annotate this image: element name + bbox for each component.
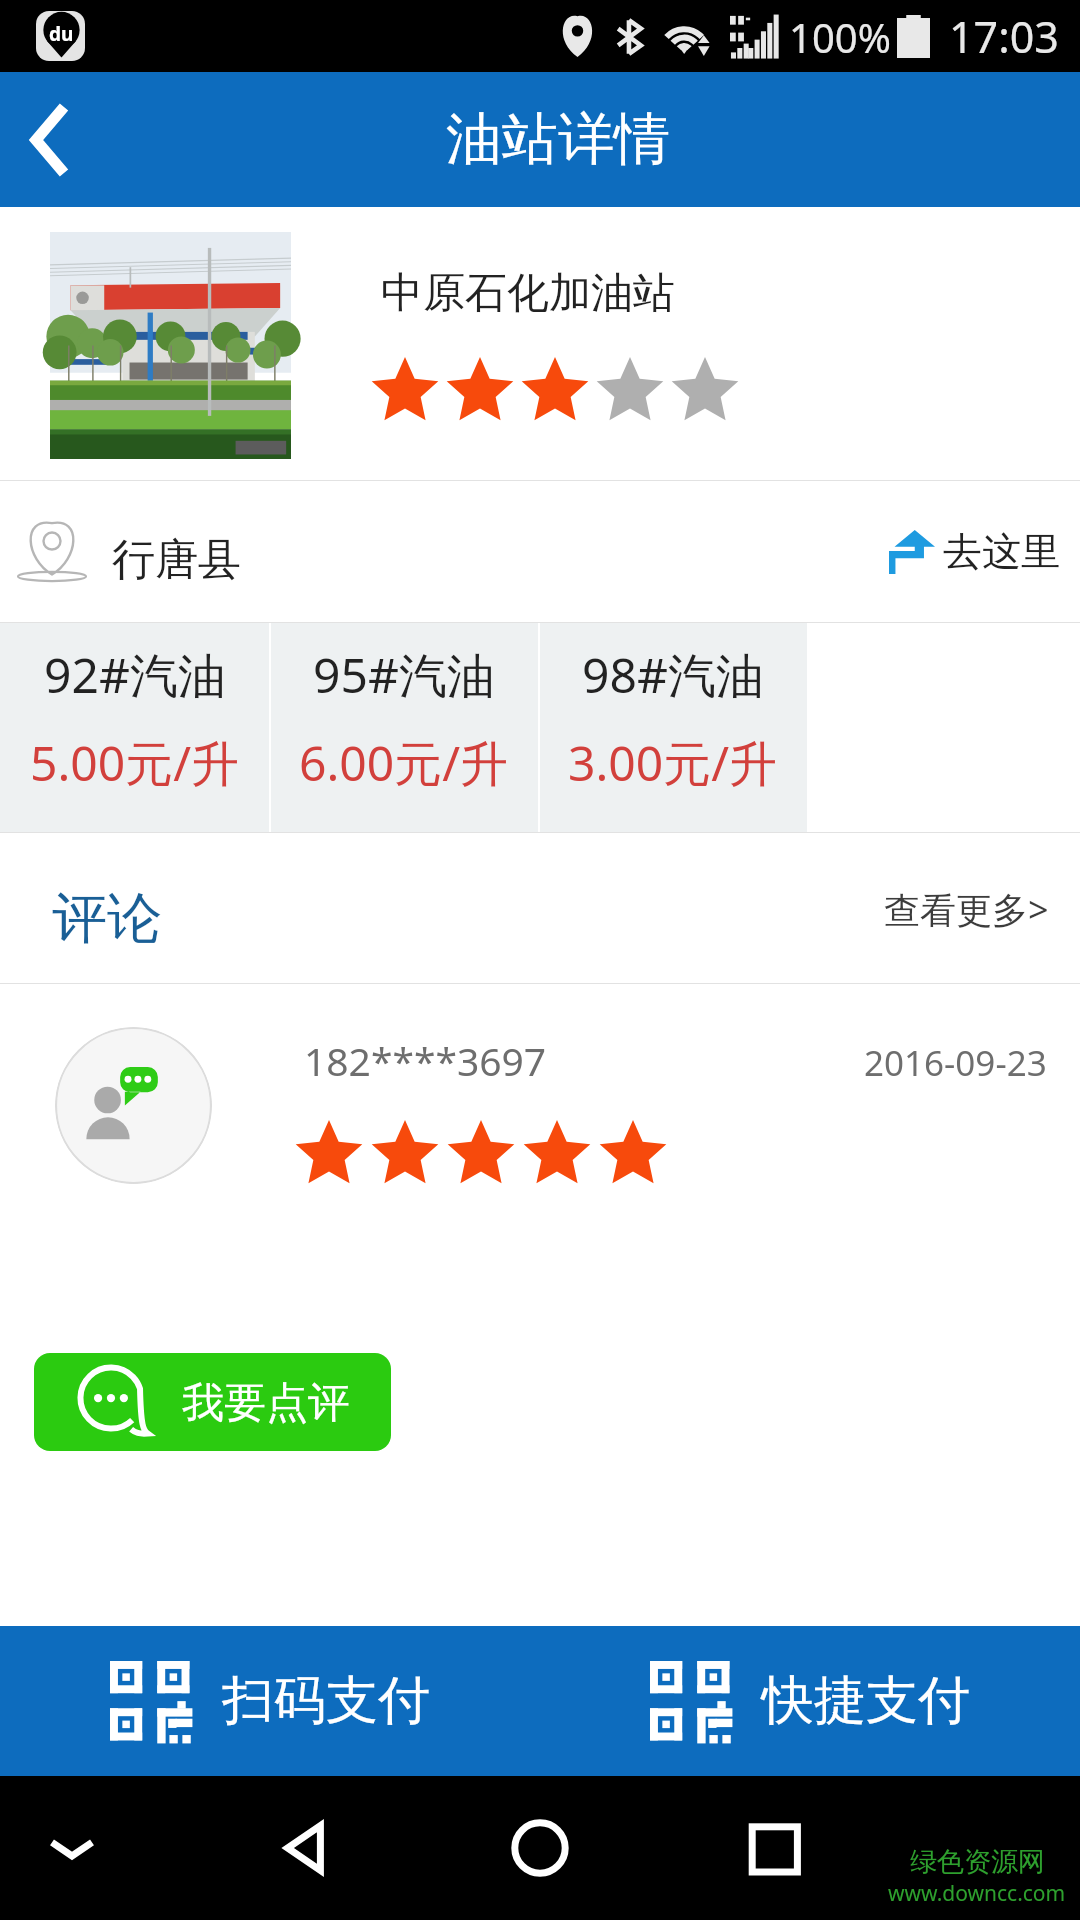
- staticText: 我要点评: [182, 1377, 350, 1430]
- button[interactable]: Back: [266, 1808, 346, 1888]
- button[interactable]: 行唐县: [0, 481, 1080, 622]
- staticText: 油站详情: [446, 104, 670, 175]
- staticText: 3.00元/升: [568, 730, 778, 796]
- button[interactable]: 去这里: [893, 481, 1060, 622]
- staticText: 快捷支付: [762, 1668, 970, 1734]
- button[interactable]: 查看更多>: [884, 833, 1080, 983]
- staticText: 评论: [52, 884, 162, 953]
- staticText: 5.00元/升: [30, 730, 240, 796]
- staticText: 95#汽油: [313, 642, 495, 708]
- button[interactable]: Station photo: [50, 232, 291, 459]
- button[interactable]: 快捷支付: [540, 1626, 1080, 1776]
- staticText: 行唐县: [112, 533, 241, 587]
- staticText: 扫码支付: [222, 1668, 430, 1734]
- button[interactable]: 我要点评: [34, 1353, 391, 1451]
- staticText: 2016-09-23: [864, 1039, 1047, 1087]
- button[interactable]: 98#汽油: [538, 623, 807, 832]
- staticText: www.downcc.com: [888, 1879, 1066, 1908]
- staticText: 182****3697: [304, 1034, 547, 1087]
- button[interactable]: Station photo: [0, 207, 1080, 480]
- staticText: 去这里: [943, 527, 1060, 576]
- button[interactable]: 182****3697: [0, 984, 1080, 1244]
- staticText: 98#汽油: [582, 642, 764, 708]
- button[interactable]: Back: [0, 72, 110, 207]
- staticText: 6.00元/升: [299, 730, 509, 796]
- staticText: 17:03: [949, 7, 1059, 66]
- staticText: 中原石化加油站: [381, 267, 675, 320]
- staticText: 查看更多>: [884, 885, 1049, 934]
- button[interactable]: Home: [500, 1808, 580, 1888]
- button[interactable]: Hide keyboard: [32, 1808, 112, 1888]
- staticText: 100%: [789, 10, 891, 64]
- button[interactable]: Recent apps: [735, 1808, 815, 1888]
- staticText: du: [49, 21, 74, 47]
- other: Baidu Maps notification: [36, 11, 85, 61]
- button[interactable]: 95#汽油: [269, 623, 538, 832]
- button[interactable]: 92#汽油: [0, 623, 269, 832]
- button[interactable]: 扫码支付: [0, 1626, 540, 1776]
- staticText: 92#汽油: [44, 642, 226, 708]
- button[interactable]: 评论: [0, 833, 182, 983]
- staticText: 绿色资源网: [910, 1845, 1045, 1879]
